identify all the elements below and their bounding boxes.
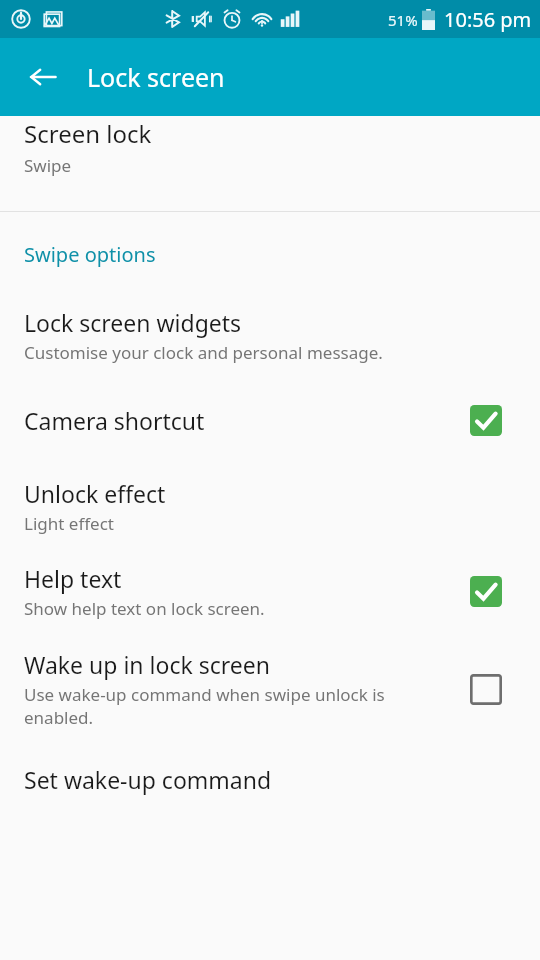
staticText: Lock screen <box>87 60 225 94</box>
staticText: Show help text on lock screen. <box>24 597 265 620</box>
staticText: Wake up in lock screen <box>24 649 270 680</box>
staticText: Customise your clock and personal messag… <box>24 341 383 364</box>
button[interactable]: Wake up in lock screen, off <box>464 667 508 711</box>
button[interactable]: Navigate up <box>19 53 67 101</box>
button[interactable]: Lock screen widgets <box>0 294 540 376</box>
button[interactable]: Screen lock <box>0 116 540 211</box>
staticText: Camera shortcut <box>24 405 205 436</box>
staticText: 10:56 pm <box>444 6 532 33</box>
button[interactable]: Camera shortcut, on <box>464 398 508 442</box>
button[interactable]: Help text <box>0 548 540 634</box>
button[interactable]: Unlock effect <box>0 464 540 548</box>
staticText: Help text <box>24 563 122 594</box>
staticText: Use wake-up command when swipe unlock is… <box>24 683 452 729</box>
staticText: Light effect <box>24 512 114 535</box>
button[interactable]: Set wake-up command <box>0 744 540 814</box>
staticText: Swipe <box>24 154 72 177</box>
button[interactable]: Wake up in lock screen <box>0 634 540 744</box>
staticText: Swipe options <box>24 241 156 268</box>
staticText: Lock screen widgets <box>24 307 242 338</box>
button[interactable]: Camera shortcut <box>0 376 540 464</box>
staticText: Set wake-up command <box>24 764 272 795</box>
button[interactable]: Help text, on <box>464 569 508 613</box>
staticText: Screen lock <box>24 117 152 150</box>
staticText: 51% <box>388 10 418 30</box>
staticText: Unlock effect <box>24 478 166 509</box>
